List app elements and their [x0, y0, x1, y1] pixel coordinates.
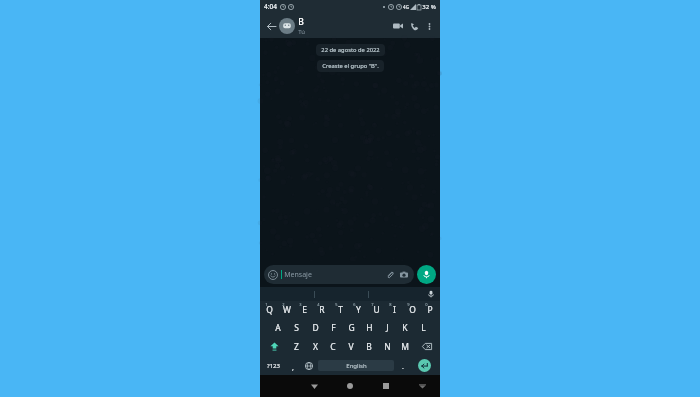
staticText: I: [393, 304, 396, 316]
staticText: Mensaje: [284, 270, 312, 280]
button[interactable]: Camera: [398, 269, 410, 281]
staticText: 6: [353, 302, 356, 307]
button[interactable]: Voice input: [422, 287, 440, 301]
button[interactable]: Back: [296, 375, 332, 397]
staticText: P: [427, 304, 433, 316]
button[interactable]: M: [396, 337, 414, 356]
button[interactable]: Attach: [384, 269, 396, 281]
staticText: 4G: [403, 4, 409, 10]
button[interactable]: Z: [287, 337, 306, 356]
button[interactable]: G: [342, 319, 360, 337]
button[interactable]: I: [385, 301, 403, 319]
button[interactable]: Back: [264, 19, 278, 33]
staticText: U: [373, 304, 380, 316]
button[interactable]: B: [360, 337, 378, 356]
button[interactable]: Hide keyboard: [404, 375, 440, 397]
button[interactable]: More options: [422, 19, 436, 33]
button[interactable]: Home: [332, 375, 368, 397]
button[interactable]: Shift: [261, 337, 287, 356]
staticText: 22 de agosto de 2022: [321, 46, 380, 54]
staticText: W: [283, 304, 291, 316]
button[interactable]: English: [318, 360, 394, 371]
staticText: T: [338, 304, 343, 316]
staticText: 4: [317, 302, 320, 307]
staticText: 8: [389, 302, 392, 307]
staticText: M: [401, 341, 409, 353]
staticText: English: [346, 362, 367, 370]
button[interactable]: A: [268, 319, 287, 337]
staticText: O: [409, 304, 416, 316]
staticText: Creaste el grupo "B".: [322, 62, 379, 70]
button[interactable]: T: [331, 301, 349, 319]
button[interactable]: N: [378, 337, 396, 356]
staticText: 2: [282, 302, 285, 307]
staticText: E: [302, 304, 307, 316]
button[interactable]: ,: [285, 356, 300, 375]
staticText: F: [331, 322, 336, 334]
staticText: 5: [335, 302, 338, 307]
button[interactable]: F: [324, 319, 342, 337]
staticText: 1: [265, 302, 268, 307]
staticText: C: [330, 341, 336, 353]
button[interactable]: Voice call: [406, 18, 422, 34]
button[interactable]: Recents: [368, 375, 404, 397]
button[interactable]: S: [287, 319, 306, 337]
button[interactable]: Y: [349, 301, 367, 319]
staticText: 0: [425, 302, 428, 307]
staticText: Q: [266, 304, 273, 316]
button[interactable]: C: [324, 337, 342, 356]
staticText: 3: [299, 302, 302, 307]
staticText: .: [402, 362, 404, 372]
staticText: H: [366, 322, 373, 334]
staticText: R: [319, 304, 325, 316]
staticText: ,: [292, 363, 294, 373]
button[interactable]: Video call: [390, 18, 406, 34]
staticText: N: [384, 341, 391, 353]
staticText: 32 %: [422, 3, 436, 11]
button[interactable]: P: [421, 301, 439, 319]
staticText: K: [402, 322, 408, 334]
button[interactable]: K: [396, 319, 414, 337]
button[interactable]: E: [295, 301, 313, 319]
staticText: B: [366, 341, 372, 353]
staticText: 7: [371, 302, 374, 307]
button[interactable]: J: [378, 319, 396, 337]
button[interactable]: X: [306, 337, 324, 356]
staticText: J: [386, 322, 389, 334]
button[interactable]: .: [395, 356, 410, 375]
staticText: Tú: [298, 28, 305, 36]
staticText: A: [275, 322, 281, 334]
staticText: B: [298, 16, 304, 28]
staticText: X: [313, 341, 318, 353]
button[interactable]: Record voice message: [417, 265, 436, 284]
button[interactable]: Q: [261, 301, 278, 319]
staticText: D: [312, 322, 319, 334]
staticText: G: [348, 322, 355, 334]
button[interactable]: O: [403, 301, 421, 319]
button[interactable]: U: [367, 301, 385, 319]
button[interactable]: R: [313, 301, 331, 319]
button[interactable]: Group avatar: [279, 18, 295, 34]
staticText: L: [421, 322, 426, 334]
button[interactable]: V: [342, 337, 360, 356]
staticText: Z: [294, 341, 299, 353]
button[interactable]: Change language: [300, 356, 317, 375]
staticText: S: [294, 322, 299, 334]
staticText: V: [348, 341, 354, 353]
button[interactable]: D: [306, 319, 324, 337]
staticText: 4:04: [264, 2, 277, 11]
button[interactable]: Backspace: [414, 337, 439, 356]
staticText: 9: [407, 302, 410, 307]
button[interactable]: Enter: [418, 359, 431, 372]
staticText: ?123: [267, 362, 280, 370]
button[interactable]: W: [278, 301, 295, 319]
button[interactable]: H: [360, 319, 378, 337]
button[interactable]: L: [414, 319, 432, 337]
button[interactable]: Mensaje: [264, 265, 414, 284]
button[interactable]: ?123: [262, 356, 285, 375]
staticText: Y: [356, 304, 361, 316]
